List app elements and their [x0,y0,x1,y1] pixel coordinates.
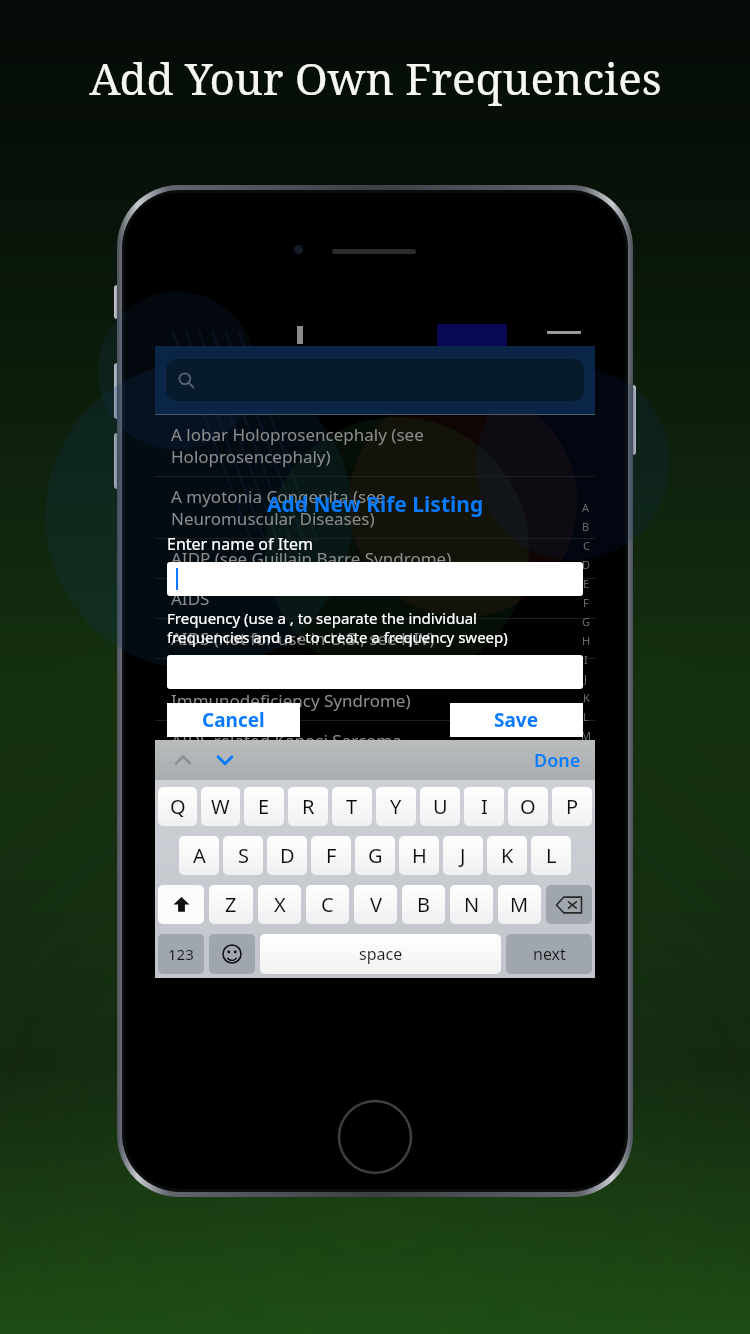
button[interactable]: B [402,885,445,924]
staticText: C [321,891,334,918]
staticText: O [582,766,591,781]
button[interactable]: H [399,836,439,875]
staticText: 123 [168,944,194,964]
button[interactable]: Cancel [167,703,300,737]
staticText: P [583,785,590,800]
staticText: J [460,842,466,869]
button[interactable]: Save [450,703,583,737]
staticText: Done [534,748,581,773]
button[interactable]: S [223,836,263,875]
button[interactable]: U [420,787,460,826]
staticText: K [501,842,514,869]
button[interactable]: 123 [158,934,204,974]
staticText: H [412,842,427,869]
button[interactable]: AIDS (Acquired Immunodeficiency Syndrome… [155,659,595,720]
button[interactable]: J [443,836,483,875]
staticText: Add New Rife Listing [267,490,484,519]
staticText: Add Your Own Frequencies [89,48,662,108]
staticText: L [546,842,557,869]
button[interactable]: V [354,885,397,924]
button[interactable]: A lobar Holoprosencephaly (see Holoprose… [155,415,595,476]
staticText: P [566,793,579,820]
button[interactable] [167,655,583,689]
staticText: AIDS (not for use in U.S., see HIV) [171,627,435,650]
button[interactable]: T [332,787,372,826]
staticText: R [302,793,315,820]
staticText: G [582,614,591,629]
staticText: Frequency (use a , to separate the indiv… [167,608,508,647]
staticText: N [464,891,480,918]
staticText: space [359,943,403,965]
staticText: AIDS [171,587,210,610]
staticText: AIDS related Kaposi Sarcoma [171,729,402,752]
button[interactable]: Next field [211,746,239,774]
staticText: U [433,793,448,820]
button[interactable]: next [506,934,592,974]
staticText: I [584,652,588,667]
staticText: H [582,633,591,648]
button[interactable]: W [201,787,240,826]
button[interactable]: AIDS [155,579,595,618]
button[interactable]: Y [376,787,416,826]
staticText: M [581,728,591,743]
button[interactable]: L [531,836,571,875]
staticText: A lobar Holoprosencephaly (see Holoprose… [171,423,424,468]
staticText: X [274,891,286,918]
staticText: AIDS (Acquired Immunodeficiency Syndrome… [171,667,411,712]
staticText: W [211,793,230,820]
staticText: E [583,576,590,591]
button[interactable]: AIDS (not for use in U.S., see HIV) [155,619,595,658]
staticText: L [583,709,589,724]
button[interactable] [166,359,584,401]
staticText: C [583,538,590,553]
button[interactable]: M [498,885,541,924]
button[interactable]: AIDP (see Guillain Barre Syndrome) [155,539,595,578]
staticText: B [417,891,430,918]
button[interactable]: Backspace [546,885,592,924]
staticText: Y [390,793,402,820]
staticText: F [583,595,589,610]
button[interactable]: R [288,787,328,826]
staticText: I [481,793,488,820]
button[interactable] [167,562,583,596]
button[interactable]: Shift [158,885,204,924]
staticText: J [584,671,588,686]
button[interactable]: I [464,787,504,826]
button[interactable]: Done [520,742,595,779]
staticText: A myotonia Congenita (see Neuromuscular … [171,485,386,530]
staticText: D [280,842,295,869]
button[interactable]: space [260,934,501,974]
button[interactable]: P [552,787,592,826]
staticText: Cancel [202,707,265,733]
button[interactable]: A myotonia Congenita (see Neuromuscular … [155,477,595,538]
button[interactable]: D [267,836,307,875]
button[interactable]: E [244,787,284,826]
staticText: AIDP (see Guillain Barre Syndrome) [171,547,452,570]
staticText: E [258,793,270,820]
staticText: Z [225,891,237,918]
staticText: D [582,557,591,572]
staticText: M [510,891,529,918]
staticText: O [520,793,536,820]
button[interactable]: Q [158,787,197,826]
staticText: F [326,842,337,869]
button[interactable]: AIDS related Kaposi Sarcoma [155,721,595,760]
button[interactable]: G [355,836,395,875]
button[interactable]: A [179,836,219,875]
button[interactable]: Emoji [209,934,255,974]
staticText: V [370,891,382,918]
staticText: B [582,519,590,534]
button[interactable]: Previous field [169,746,197,774]
staticText: K [583,690,590,705]
button[interactable]: C [306,885,349,924]
staticText: R [583,823,590,838]
button[interactable]: O [508,787,548,826]
button[interactable]: X [258,885,301,924]
button[interactable]: Z [209,885,253,924]
button[interactable]: F [311,836,351,875]
staticText: Enter name of Item [167,533,313,555]
button[interactable]: N [450,885,493,924]
staticText: Save [494,707,539,733]
button[interactable]: K [487,836,527,875]
